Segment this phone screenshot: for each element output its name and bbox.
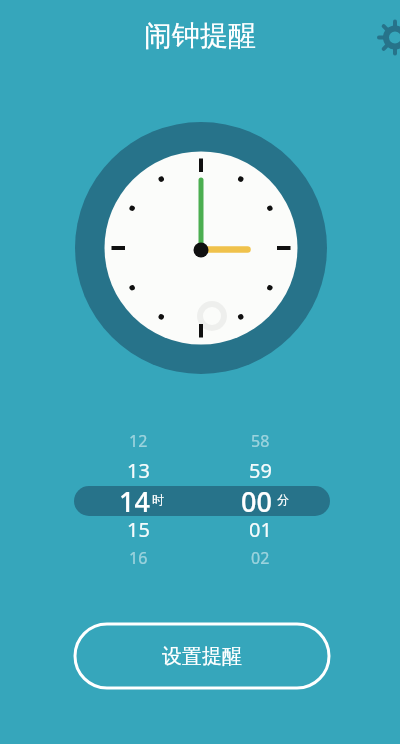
staticText: 00 [241, 483, 272, 517]
staticText: 15 [127, 516, 150, 543]
button[interactable] [74, 486, 330, 516]
staticText: 分 [277, 492, 289, 507]
staticText: 59 [249, 457, 272, 484]
staticText: 02 [251, 547, 270, 569]
staticText: 时 [152, 492, 164, 507]
staticText: 设置提醒 [162, 644, 242, 669]
staticText: 16 [129, 547, 148, 569]
staticText: 13 [127, 457, 150, 484]
staticText: 12 [129, 430, 148, 452]
staticText: 58 [251, 430, 270, 452]
staticText: 01 [249, 516, 272, 543]
button[interactable] [373, 15, 400, 59]
staticText: 闹钟提醒 [144, 18, 256, 53]
staticText: 14 [119, 483, 150, 517]
button[interactable]: 设置提醒 [75, 624, 329, 688]
